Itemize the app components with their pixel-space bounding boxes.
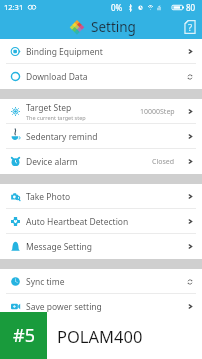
staticText: Closed [152, 157, 175, 167]
staticText: POLAM400 [57, 325, 143, 347]
staticText: The current target step [26, 114, 86, 121]
staticText: Take Photo [26, 191, 71, 203]
staticText: Binding Equipment [26, 46, 103, 58]
staticText: Sedentary remind [26, 131, 98, 143]
staticText: Target Step [26, 102, 72, 114]
staticText: #5 [13, 323, 35, 348]
button[interactable]: Sync time [0, 269, 202, 294]
staticText: Sync time [26, 276, 65, 288]
button[interactable]: Binding Equipment [0, 39, 202, 64]
button[interactable]: Help [181, 18, 198, 35]
staticText: 0% [111, 2, 123, 13]
staticText: ? [188, 21, 193, 34]
button[interactable]: Save power setting [0, 294, 202, 319]
button[interactable]: Download Data [0, 64, 202, 89]
staticText: Message Setting [26, 241, 92, 253]
staticText: 10000Step [140, 107, 175, 117]
button[interactable]: Take Photo [0, 184, 202, 209]
staticText: Download Data [26, 71, 88, 83]
staticText: Setting [91, 18, 136, 36]
staticText: 80 [186, 2, 196, 13]
staticText: 12:31 [4, 2, 24, 12]
button[interactable]: Message Setting [0, 234, 202, 259]
button[interactable]: Device alarm [0, 149, 202, 174]
staticText: Auto Heartbeat Detection [26, 216, 129, 228]
button[interactable]: Auto Heartbeat Detection [0, 209, 202, 234]
staticText: Save power setting [26, 301, 102, 313]
staticText: Device alarm [26, 156, 78, 168]
button[interactable]: Sedentary remind [0, 124, 202, 149]
button[interactable]: Target Step [0, 99, 202, 124]
